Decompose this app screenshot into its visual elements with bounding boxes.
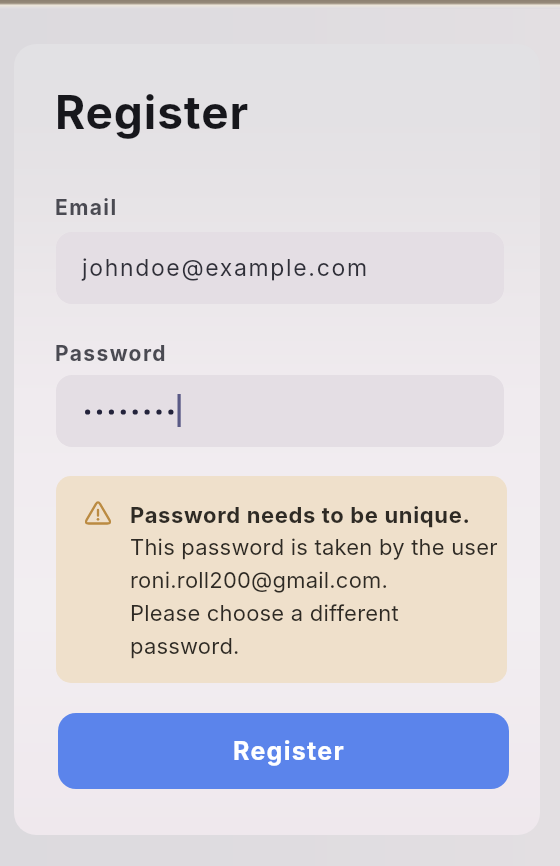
button[interactable]: Register — [58, 713, 509, 789]
staticText: johndoe@example.com — [82, 254, 369, 282]
staticText: Register — [55, 84, 250, 140]
button[interactable] — [56, 375, 504, 447]
button[interactable]: johndoe@example.com — [56, 232, 504, 304]
staticText: Password — [55, 341, 167, 366]
staticText: Password needs to be unique. — [130, 502, 471, 529]
staticText: This password is taken by the user roni.… — [130, 534, 498, 659]
staticText: Email — [55, 195, 118, 220]
staticText: Register — [233, 736, 345, 766]
